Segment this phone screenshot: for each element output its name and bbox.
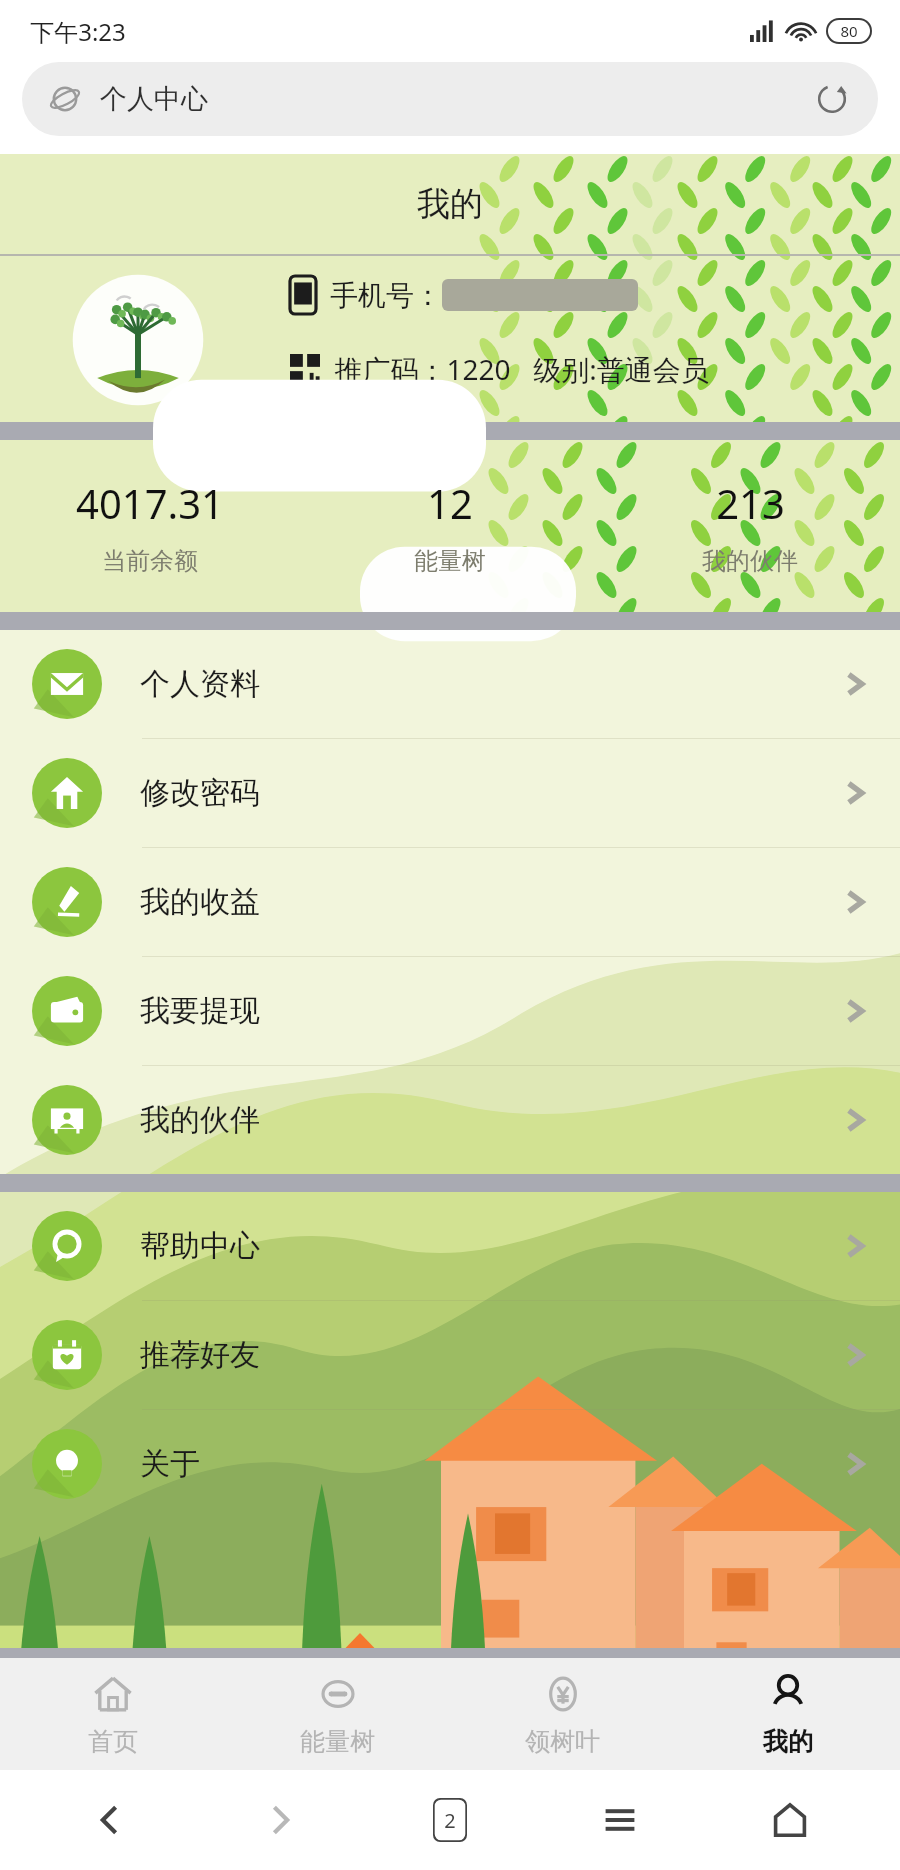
staticText: 下午3:23 (30, 15, 126, 48)
staticText: 推荐好友 (140, 1336, 260, 1374)
staticText: 213 (716, 476, 785, 530)
staticText: 我的伙伴 (140, 1101, 260, 1139)
staticText: 关于 (140, 1445, 200, 1483)
staticText: 我的伙伴 (702, 546, 798, 576)
staticText: 手机号： (330, 278, 442, 313)
staticText: 我要提现 (140, 992, 260, 1030)
staticText: 80 (840, 21, 858, 41)
button[interactable]: 我的收益 (0, 848, 900, 956)
button[interactable]: 推荐好友 (0, 1301, 900, 1409)
button[interactable]: Menu (590, 1790, 650, 1850)
button[interactable]: 我的 (675, 1658, 900, 1770)
staticText: 12 (427, 476, 473, 530)
staticText: 个人资料 (140, 665, 260, 703)
staticText: 首页 (88, 1726, 138, 1757)
staticText: 我的 (417, 183, 483, 225)
button[interactable]: Refresh (812, 79, 852, 119)
staticText: 修改密码 (140, 774, 260, 812)
staticText: 4017.31 (76, 476, 224, 530)
button[interactable]: 首页 (0, 1658, 225, 1770)
staticText: 领树叶 (525, 1726, 600, 1757)
button[interactable]: 213 (600, 440, 900, 612)
button[interactable]: 个人资料 (0, 630, 900, 738)
staticText: 当前余额 (102, 546, 198, 576)
staticText: 我的 (763, 1726, 813, 1757)
button[interactable]: 关于 (0, 1410, 900, 1518)
button[interactable]: Forward (250, 1790, 310, 1850)
button[interactable]: 能量树 (225, 1658, 450, 1770)
button[interactable]: 帮助中心 (0, 1192, 900, 1300)
button[interactable]: Home (760, 1790, 820, 1850)
staticText: 推广码：1220 (334, 350, 511, 388)
staticText: 个人中心 (100, 82, 208, 116)
button[interactable]: Back (80, 1790, 140, 1850)
button[interactable]: 修改密码 (0, 739, 900, 847)
staticText: 帮助中心 (140, 1227, 260, 1265)
staticText: 级别:普通会员 (533, 350, 709, 388)
button[interactable]: 领树叶 (450, 1658, 675, 1770)
staticText: 我的收益 (140, 883, 260, 921)
button[interactable]: 我的伙伴 (0, 1066, 900, 1174)
button[interactable]: 4017.31 (0, 440, 300, 612)
button[interactable]: 个人中心 (22, 62, 878, 136)
staticText: 能量树 (300, 1726, 375, 1757)
staticText: 2 (444, 1807, 456, 1834)
button[interactable]: 我要提现 (0, 957, 900, 1065)
button[interactable]: Tabs (420, 1790, 480, 1850)
staticText: 能量树 (414, 546, 486, 576)
button[interactable]: 12 (300, 440, 600, 612)
